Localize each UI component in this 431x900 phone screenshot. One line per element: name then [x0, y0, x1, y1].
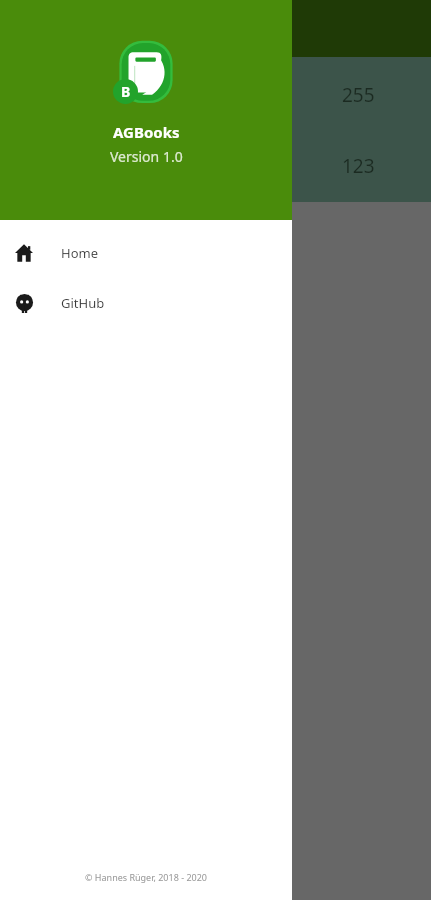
staticText: 255 [342, 82, 375, 108]
staticText: GitHub [61, 294, 105, 312]
staticText: Version 1.0 [110, 147, 183, 166]
staticText: AGBooks [113, 122, 180, 142]
staticText: B [121, 82, 131, 101]
other: GitHub [15, 294, 34, 313]
other: Home [15, 244, 33, 262]
staticText: 123 [342, 153, 375, 179]
button[interactable]: Home [0, 228, 292, 278]
button[interactable]: GitHub [0, 278, 292, 328]
staticText: © Hannes Rüger, 2018 - 2020 [0, 871, 292, 883]
staticText: Home [61, 244, 98, 262]
